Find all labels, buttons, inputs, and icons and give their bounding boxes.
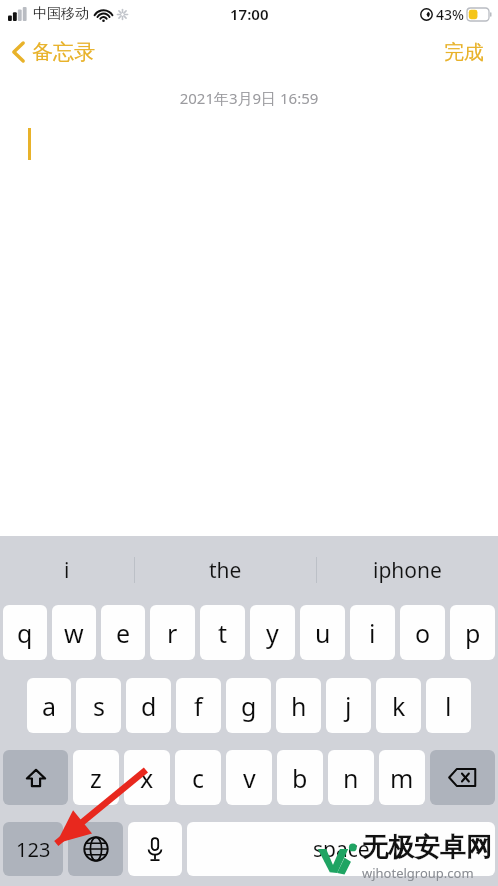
staticText: b (292, 761, 308, 795)
staticText: e (116, 616, 131, 650)
button[interactable]: b (277, 750, 323, 805)
button[interactable]: x (124, 750, 170, 805)
button[interactable]: p (450, 605, 495, 660)
staticText: v (243, 761, 256, 795)
staticText: q (17, 616, 33, 650)
staticText: g (241, 689, 257, 723)
button[interactable]: 备忘录 (0, 33, 105, 71)
staticText: 无极安卓网 (362, 831, 492, 864)
button[interactable]: the (135, 536, 316, 604)
button[interactable]: 完成 (430, 34, 498, 71)
staticText: x (140, 761, 154, 795)
button[interactable]: t (200, 605, 245, 660)
staticText: m (390, 761, 414, 795)
button[interactable]: g (226, 678, 271, 733)
staticText: d (141, 689, 157, 723)
staticText: i (64, 556, 70, 585)
button[interactable]: h (276, 678, 321, 733)
button[interactable]: s (76, 678, 121, 733)
button[interactable]: w (52, 605, 96, 660)
staticText: z (90, 761, 102, 795)
button[interactable]: q (3, 605, 47, 660)
staticText: u (315, 616, 331, 650)
staticText: 完成 (444, 40, 484, 65)
button[interactable]: r (150, 605, 195, 660)
staticText: space (313, 835, 370, 864)
button[interactable]: z (73, 750, 119, 805)
staticText: h (291, 689, 307, 723)
staticText: 43% (436, 5, 464, 24)
staticText: t (218, 616, 228, 650)
staticText: n (343, 761, 359, 795)
staticText: o (415, 616, 431, 650)
staticText: 17:00 (230, 4, 269, 24)
button[interactable]: e (101, 605, 145, 660)
staticText: a (42, 689, 57, 723)
staticText: j (345, 689, 352, 723)
button[interactable]: Change keyboard (68, 822, 123, 876)
staticText: wjhotelgroup.com (362, 864, 474, 882)
button[interactable]: o (400, 605, 445, 660)
button[interactable]: Dictation (128, 822, 182, 876)
button[interactable]: Backspace (430, 750, 495, 805)
staticText: c (192, 761, 205, 795)
staticText: 中国移动 (33, 5, 89, 23)
staticText: iphone (373, 556, 442, 585)
staticText: k (392, 689, 406, 723)
button[interactable]: d (126, 678, 171, 733)
staticText: 2021年3月9日 16:59 (0, 88, 498, 108)
staticText: w (64, 616, 84, 650)
button[interactable]: 123 (3, 822, 63, 876)
button[interactable]: space (187, 822, 495, 876)
staticText: y (266, 616, 279, 650)
button[interactable]: y (250, 605, 295, 660)
staticText: the (209, 556, 242, 585)
staticText: 123 (16, 836, 51, 863)
button[interactable]: i (0, 536, 134, 604)
button[interactable]: m (379, 750, 425, 805)
button[interactable]: c (175, 750, 221, 805)
button[interactable]: n (328, 750, 374, 805)
staticText: i (369, 616, 376, 650)
staticText: p (465, 616, 481, 650)
button[interactable]: f (176, 678, 221, 733)
staticText: f (194, 689, 203, 723)
button[interactable]: i (350, 605, 395, 660)
button[interactable]: a (27, 678, 71, 733)
staticText: s (93, 689, 105, 723)
button[interactable]: v (226, 750, 272, 805)
button[interactable]: j (326, 678, 371, 733)
button[interactable]: k (376, 678, 421, 733)
button[interactable]: Shift (3, 750, 68, 805)
staticText: r (167, 616, 178, 650)
staticText: l (445, 689, 452, 723)
button[interactable]: iphone (317, 536, 498, 604)
staticText: 备忘录 (32, 39, 95, 65)
button[interactable]: l (426, 678, 471, 733)
button[interactable]: u (300, 605, 345, 660)
